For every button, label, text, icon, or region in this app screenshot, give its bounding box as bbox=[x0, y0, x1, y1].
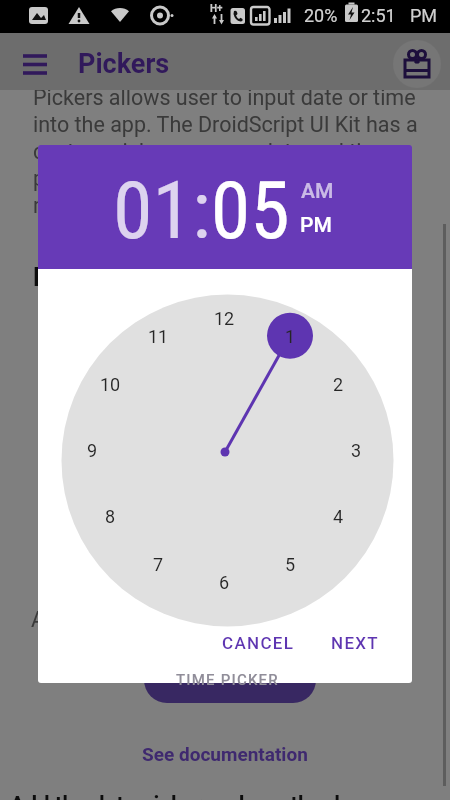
button[interactable]: AM bbox=[287, 177, 347, 205]
staticText: 8 bbox=[105, 506, 116, 527]
staticText: AM bbox=[301, 179, 334, 204]
staticText: 5 bbox=[285, 554, 296, 575]
staticText: Pickers bbox=[78, 48, 170, 80]
staticText: 3 bbox=[351, 440, 362, 461]
staticText: 10 bbox=[100, 374, 121, 395]
staticText: 2 bbox=[333, 374, 344, 395]
button[interactable]: NEXT bbox=[325, 626, 385, 660]
staticText: 2:51 bbox=[361, 5, 396, 26]
button[interactable]: PM bbox=[286, 211, 346, 239]
staticText: 12 bbox=[214, 308, 235, 329]
staticText: 01:05 bbox=[113, 164, 290, 256]
staticText: NEXT bbox=[331, 633, 379, 653]
staticText: 7 bbox=[153, 554, 164, 575]
staticText: 20% bbox=[304, 5, 338, 26]
staticText: TIME PICKER bbox=[176, 671, 279, 689]
staticText: PM bbox=[410, 5, 438, 26]
staticText: Add the date picker and see the doc bbox=[10, 792, 364, 800]
button[interactable]: CANCEL bbox=[220, 626, 296, 660]
staticText: Adds a date picker dialog into the app. bbox=[31, 607, 397, 632]
staticText: 11 bbox=[148, 326, 169, 347]
button[interactable] bbox=[12, 46, 58, 82]
staticText: CANCEL bbox=[222, 633, 295, 653]
staticText: Date Picker bbox=[33, 263, 163, 292]
button[interactable]: See documentation bbox=[120, 738, 330, 770]
staticText: 1 bbox=[285, 326, 296, 347]
staticText: 9 bbox=[87, 440, 98, 461]
button[interactable] bbox=[144, 657, 316, 703]
staticText: See documentation bbox=[142, 743, 308, 765]
staticText: H+ bbox=[210, 3, 223, 15]
staticText: Pickers allows user to input date or tim… bbox=[33, 85, 418, 219]
button[interactable] bbox=[393, 40, 441, 88]
staticText: 6 bbox=[219, 572, 230, 593]
staticText: PM bbox=[300, 213, 332, 238]
staticText: 4 bbox=[333, 506, 344, 527]
